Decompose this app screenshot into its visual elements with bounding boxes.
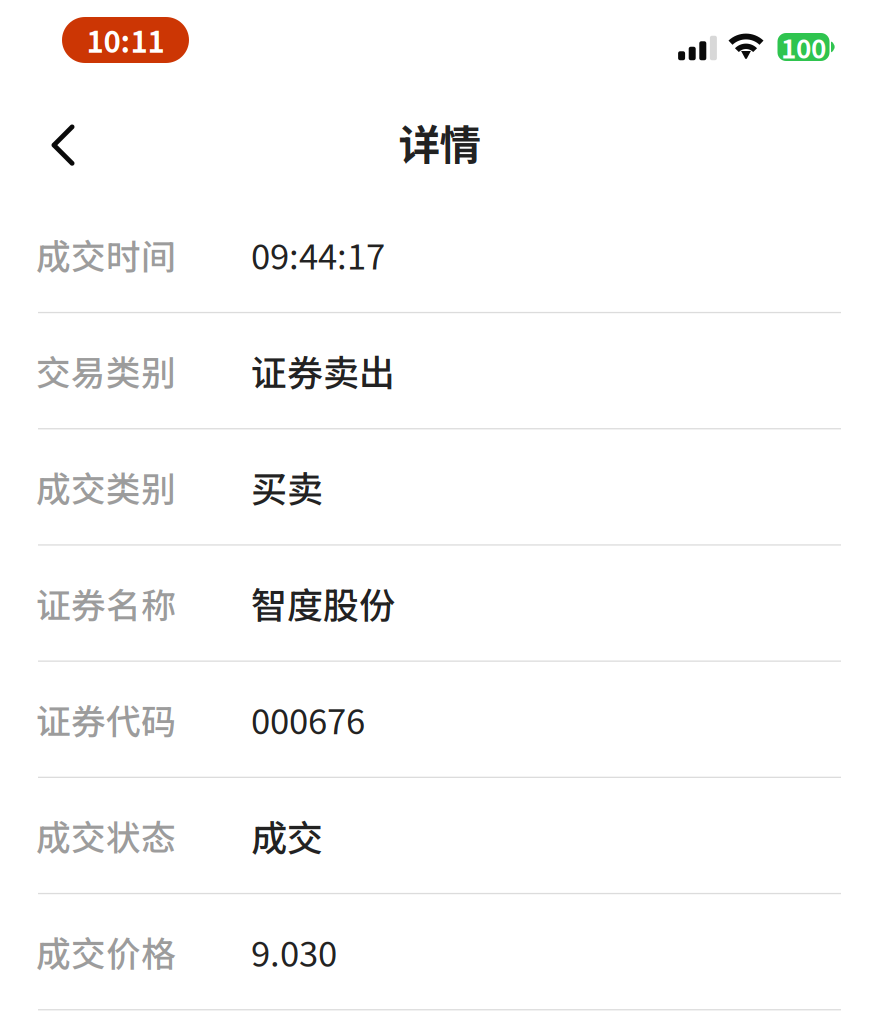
staticText: 000676 bbox=[251, 694, 365, 744]
staticText: 证券卖出 bbox=[251, 345, 395, 397]
button[interactable]: Back bbox=[26, 108, 100, 182]
staticText: 成交时间 bbox=[36, 229, 176, 280]
staticText: 智度股份 bbox=[251, 577, 395, 629]
staticText: 证券代码 bbox=[36, 694, 176, 744]
button[interactable]: 交易类别 bbox=[0, 313, 879, 429]
staticText: 09:44:17 bbox=[251, 229, 385, 280]
staticText: 证券名称 bbox=[36, 578, 176, 628]
staticText: 买卖 bbox=[251, 461, 323, 513]
staticText: 9.030 bbox=[251, 927, 337, 977]
staticText: 交易类别 bbox=[36, 346, 176, 396]
staticText: 成交 bbox=[251, 809, 323, 861]
staticText: 100 bbox=[781, 28, 826, 66]
button[interactable]: 成交状态 bbox=[0, 778, 879, 894]
staticText: 成交状态 bbox=[36, 810, 176, 861]
staticText: 详情 bbox=[398, 112, 480, 172]
staticText: 成交类别 bbox=[36, 462, 176, 512]
staticText: 10:11 bbox=[86, 19, 164, 61]
staticText: 成交价格 bbox=[36, 927, 176, 977]
button[interactable]: 成交价格 bbox=[0, 894, 879, 1010]
button[interactable]: 证券名称 bbox=[0, 546, 879, 662]
button[interactable]: 成交时间 bbox=[0, 197, 879, 313]
button[interactable]: 证券代码 bbox=[0, 662, 879, 778]
button[interactable]: 成交类别 bbox=[0, 429, 879, 546]
